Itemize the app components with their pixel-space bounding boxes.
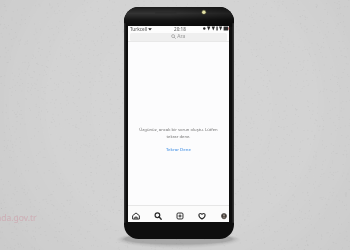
staticText: Turkcell [130, 26, 148, 31]
button[interactable]: Profile [215, 209, 233, 223]
button[interactable]: Home [127, 209, 145, 223]
button[interactable] [130, 33, 227, 41]
button[interactable]: Search [149, 209, 167, 223]
staticText: 20:18 [174, 26, 186, 31]
button[interactable]: Activity [193, 209, 211, 223]
button[interactable]: Tekrar Dene [164, 145, 193, 153]
staticText: Üzgünüz, ancak bir sorun oluştu. Lütfen … [139, 127, 218, 139]
staticText: nda.gov.tr [0, 212, 37, 224]
staticText: Tekrar Dene [166, 146, 191, 152]
staticText: Ara [176, 33, 186, 40]
button[interactable]: New post [171, 209, 189, 223]
